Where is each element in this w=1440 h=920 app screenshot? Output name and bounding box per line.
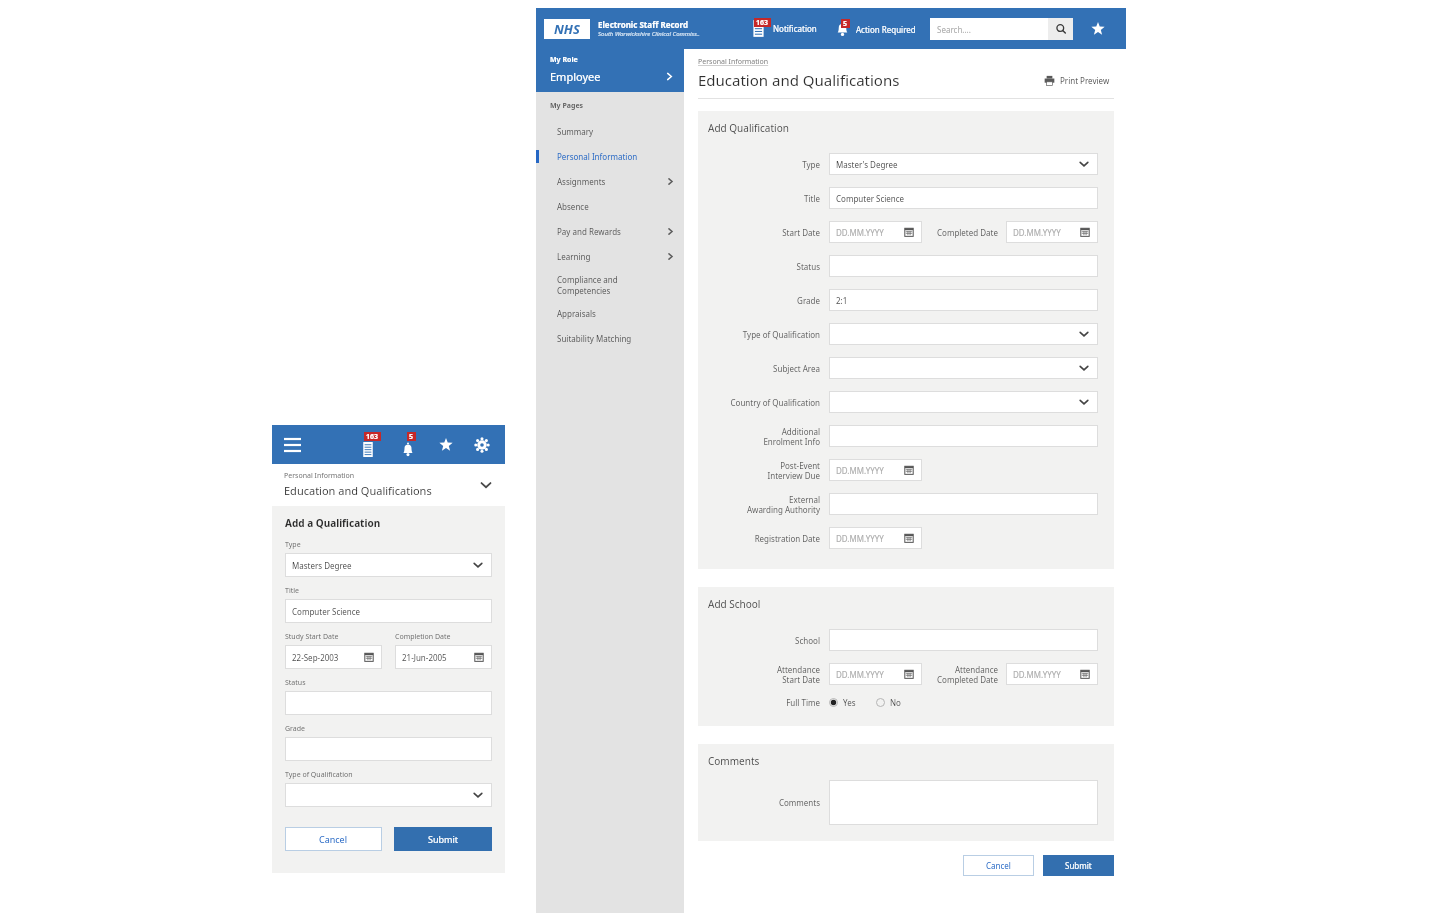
button[interactable] [285,737,492,761]
staticText: Learning [557,251,665,262]
staticText: 163 [756,18,769,27]
button[interactable] [829,493,1098,515]
button[interactable]: DD.MM.YYYY [829,221,922,243]
button[interactable]: Yes [829,695,856,710]
button[interactable] [829,323,1098,345]
staticText: DD.MM.YYYY [1013,669,1080,680]
staticText: Grade [285,724,306,734]
button[interactable]: Personal Information [698,57,769,67]
button[interactable]: 2:1 [829,289,1098,311]
button[interactable]: Learning [536,244,684,269]
button[interactable]: Cancel [963,855,1034,876]
staticText: Print Preview [1060,75,1110,86]
staticText: Cancel [986,860,1011,871]
button[interactable]: Compliance and Competencies [536,269,684,301]
button[interactable]: Absence [536,194,684,219]
button[interactable]: Menu [284,434,306,456]
staticText: Cancel [319,833,348,845]
button[interactable]: Personal Information [272,464,505,506]
button[interactable]: Print Preview [1040,71,1114,90]
staticText: Master's Degree [836,159,1078,170]
staticText: Attendance Start Date [708,664,820,685]
button[interactable]: Pay and Rewards [536,219,684,244]
button[interactable]: Settings [471,434,493,456]
button[interactable]: DD.MM.YYYY [829,527,922,549]
staticText: Submit [428,833,459,845]
staticText: Status [285,678,306,688]
button[interactable]: Submit [1043,855,1114,876]
staticText: School [708,635,820,646]
staticText: Attendance Completed Date [930,664,998,685]
staticText: Status [708,261,820,272]
staticText: Search.... [937,24,1048,35]
button[interactable]: Submit [394,827,492,851]
button[interactable]: Computer Science [285,599,492,623]
staticText: Masters Degree [292,560,472,571]
button[interactable]: Appraisals [536,301,684,326]
staticText: Full Time [708,697,820,708]
staticText: Assignments [557,176,665,187]
staticText: Summary [557,126,684,137]
staticText: DD.MM.YYYY [1013,227,1080,238]
staticText: Add a Qualification [285,516,381,530]
button[interactable]: Summary [536,119,684,144]
staticText: External Awarding Authority [708,494,820,515]
button[interactable]: Suitability Matching [536,326,684,351]
staticText: Type of Qualification [708,329,820,340]
button[interactable] [829,780,1098,825]
staticText: Type of Qualification [285,770,353,780]
staticText: Appraisals [557,308,684,319]
button[interactable] [285,783,492,807]
staticText: Completed Date [930,227,998,238]
button[interactable] [829,255,1098,277]
staticText: 5 [843,19,848,28]
button[interactable] [829,629,1098,651]
button[interactable]: DD.MM.YYYY [1006,221,1098,243]
staticText: My Role [550,55,578,65]
staticText: Start Date [708,227,820,238]
button[interactable]: Favourites [435,434,457,456]
button[interactable]: Masters Degree [285,553,492,577]
button[interactable] [829,425,1098,447]
staticText: Comments [708,797,820,808]
staticText: My Pages [550,101,584,111]
staticText: Employee [550,69,663,84]
staticText: 2:1 [836,295,1098,306]
button[interactable]: Action required [395,432,421,458]
button[interactable]: DD.MM.YYYY [1006,663,1098,685]
button[interactable]: DD.MM.YYYY [829,459,922,481]
button[interactable]: Search.... [930,18,1073,40]
button[interactable]: 163 [748,19,819,38]
button[interactable]: Assignments [536,169,684,194]
button[interactable]: Computer Science [829,187,1098,209]
button[interactable] [829,357,1098,379]
button[interactable]: DD.MM.YYYY [829,663,922,685]
button[interactable]: 22-Sep-2003 [285,645,382,669]
button[interactable]: Notifications [355,432,381,458]
staticText: No [890,697,901,708]
button[interactable]: Favourites [1087,18,1109,40]
staticText: Type [708,159,820,170]
button[interactable]: Cancel [285,827,382,851]
staticText: Action Required [856,24,916,35]
button[interactable]: 5 [833,20,918,38]
button[interactable] [829,391,1098,413]
staticText: Education and Qualifications [698,70,1040,90]
staticText: Grade [708,295,820,306]
staticText: South Warwickshire Clinical Commiss.. [598,30,700,38]
staticText: 5 [409,432,414,441]
staticText: 22-Sep-2003 [292,652,364,663]
staticText: Comments [708,754,760,768]
staticText: Subject Area [708,363,820,374]
staticText: Study Start Date [285,632,339,642]
staticText: DD.MM.YYYY [836,533,904,544]
button[interactable]: My Role [536,49,684,92]
staticText: Electronic Staff Record [598,19,689,30]
button[interactable]: Personal Information [536,144,684,169]
button[interactable] [285,691,492,715]
staticText: Country of Qualification [708,397,820,408]
button[interactable]: Master's Degree [829,153,1098,175]
button[interactable]: 21-Jun-2005 [395,645,492,669]
staticText: Registration Date [708,533,820,544]
button[interactable]: No [876,695,901,710]
